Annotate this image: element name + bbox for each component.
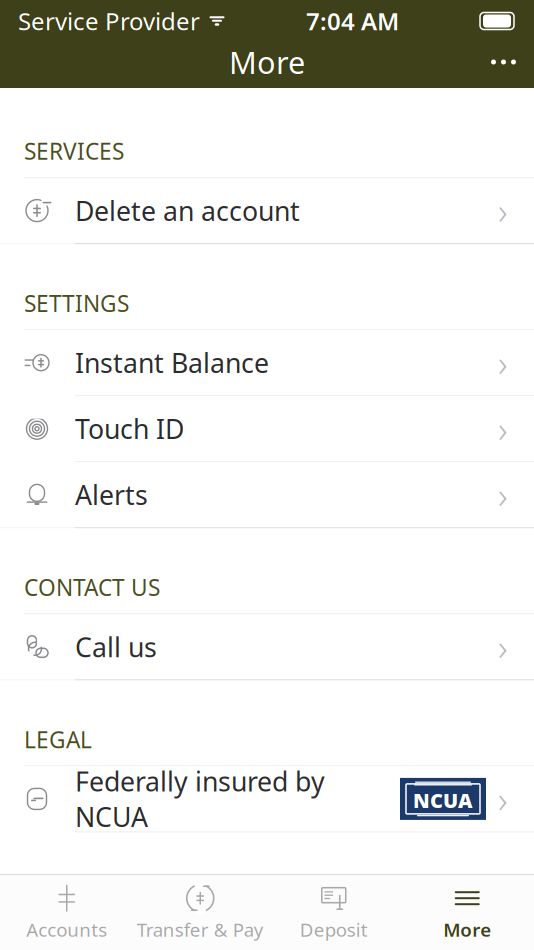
staticText: LEGAL xyxy=(24,724,92,754)
button[interactable]: More options xyxy=(473,43,534,80)
button[interactable]: Federally insured by NCUA xyxy=(0,766,534,831)
staticText: Touch ID xyxy=(75,411,184,446)
staticText: SERVICES xyxy=(24,136,124,166)
staticText: More xyxy=(443,917,491,942)
staticText: CONTACT US xyxy=(24,572,160,602)
button[interactable]: Delete an account xyxy=(0,178,534,243)
staticText: › xyxy=(498,471,508,519)
staticText: Alerts xyxy=(75,477,148,512)
button[interactable]: Instant Balance xyxy=(0,330,534,395)
staticText: Deposit xyxy=(300,917,368,942)
staticText: 7:04 AM xyxy=(306,5,399,37)
staticText: Call us xyxy=(75,629,157,664)
button[interactable]: Call us xyxy=(0,614,534,679)
staticText: › xyxy=(498,623,508,671)
staticText: SETTINGS xyxy=(24,288,129,318)
staticText: Federally insured by NCUA xyxy=(75,763,325,834)
staticText: › xyxy=(498,775,508,823)
staticText: Transfer & Pay xyxy=(137,917,264,942)
staticText: › xyxy=(498,187,508,234)
button[interactable]: Alerts xyxy=(0,462,534,527)
button[interactable]: More xyxy=(400,875,534,950)
button[interactable]: Deposit xyxy=(267,875,400,950)
staticText: › xyxy=(498,339,508,387)
button[interactable]: Transfer & Pay xyxy=(133,875,267,950)
staticText: NCUA xyxy=(413,787,473,814)
staticText: Accounts xyxy=(26,917,107,942)
button[interactable]: Touch ID xyxy=(0,396,534,461)
staticText: Service Provider xyxy=(18,5,200,37)
staticText: › xyxy=(498,405,508,453)
staticText: Delete an account xyxy=(75,193,300,228)
button[interactable]: Accounts xyxy=(0,875,133,950)
staticText: Instant Balance xyxy=(75,345,269,380)
staticText: More xyxy=(229,42,305,82)
